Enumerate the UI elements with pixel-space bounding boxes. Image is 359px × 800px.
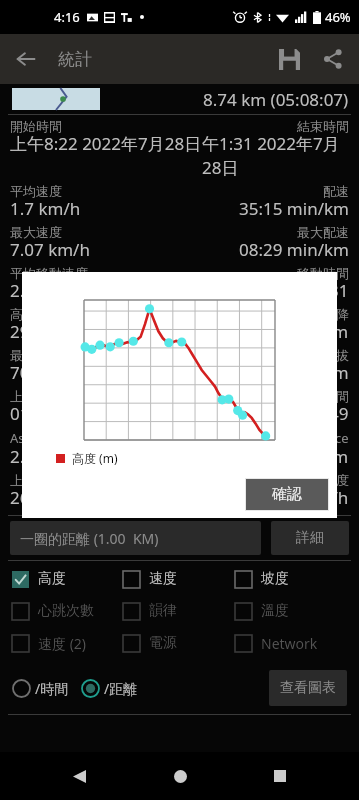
- staticText: 高度上升: [10, 306, 62, 322]
- staticText: 337.55 m/h: [258, 486, 349, 509]
- staticText: 上升時間: [10, 388, 62, 404]
- staticText: 開始時間: [10, 118, 62, 134]
- button[interactable]: Home: [158, 754, 202, 798]
- button[interactable]: Save: [267, 37, 311, 81]
- staticText: 詳細: [296, 529, 324, 547]
- staticText: 01:49: [305, 402, 349, 425]
- staticText: 最低海拔: [297, 347, 349, 363]
- staticText: 2955 m: [289, 320, 349, 343]
- staticText: 03:31: [305, 279, 349, 302]
- staticText: 46%: [325, 8, 351, 26]
- button[interactable]: 高度上升: [0, 306, 359, 345]
- button[interactable]: Back: [6, 39, 46, 79]
- staticText: 結束時間: [297, 118, 349, 134]
- staticText: 8.74 km (05:08:07): [203, 88, 349, 111]
- button[interactable]: 上升時間: [0, 388, 359, 427]
- button[interactable]: 上升速度: [0, 472, 359, 511]
- staticText: 上升速度: [10, 472, 62, 488]
- staticText: 心跳次數: [38, 602, 94, 620]
- staticText: 統計: [58, 49, 92, 70]
- staticText: 4:16: [54, 8, 80, 26]
- staticText: Network: [261, 634, 318, 653]
- staticText: 01:20: [10, 402, 54, 425]
- button[interactable]: 心跳次數: [12, 595, 123, 627]
- staticText: 最大配速: [297, 224, 349, 240]
- staticText: 最大速度: [10, 224, 62, 240]
- staticText: Descent pace: [267, 429, 349, 447]
- staticText: 確認: [272, 485, 302, 504]
- button[interactable]: /距離: [81, 673, 138, 704]
- staticText: 速度 (2): [38, 634, 87, 653]
- button[interactable]: Back: [57, 754, 101, 798]
- button[interactable]: 最大速度: [0, 224, 359, 263]
- button[interactable]: 韻律: [123, 595, 235, 627]
- button[interactable]: 速度: [123, 563, 235, 595]
- button[interactable]: 詳細: [271, 521, 349, 555]
- staticText: 下降速度: [297, 472, 349, 488]
- button[interactable]: 速度 (2): [12, 627, 123, 660]
- staticText: 高度 (m): [72, 450, 118, 466]
- staticText: /時間: [35, 679, 69, 698]
- staticText: 08:29 min/km: [239, 238, 349, 261]
- staticText: 高度下降: [297, 306, 349, 322]
- staticText: 2.77 km: [10, 445, 74, 468]
- button[interactable]: 開始時間: [0, 118, 359, 181]
- staticText: 下降時間: [297, 388, 349, 404]
- staticText: 1.7 km/h: [10, 197, 81, 220]
- staticText: 韻律: [149, 602, 177, 620]
- button[interactable]: 一圈的距離 (1.00 KM): [10, 521, 261, 555]
- button[interactable]: /時間: [12, 673, 69, 704]
- button[interactable]: 8.74 km (05:08:07): [0, 84, 359, 114]
- staticText: 266.47 m/h: [10, 486, 101, 509]
- staticText: 一圈的距離 (1.00 KM): [20, 529, 159, 548]
- staticText: 最高海拔: [10, 347, 62, 363]
- staticText: 2.75 km: [285, 445, 349, 468]
- staticText: 平均移動速度: [10, 265, 88, 281]
- button[interactable]: Share: [311, 37, 355, 81]
- staticText: Ascent pace: [10, 429, 84, 447]
- button[interactable]: Ascent pace: [0, 429, 359, 470]
- staticText: 配速: [323, 183, 349, 199]
- staticText: 坡度: [261, 570, 289, 588]
- button[interactable]: 最高海拔: [0, 347, 359, 386]
- staticText: /距離: [104, 679, 138, 698]
- button[interactable]: 查看圖表: [269, 670, 347, 706]
- staticText: 上午8:22 2022年7月28日: [10, 132, 202, 155]
- button[interactable]: 確認: [246, 479, 328, 510]
- button[interactable]: Recents: [258, 754, 302, 798]
- staticText: 電源: [149, 634, 177, 652]
- staticText: 7.07 km/h: [10, 238, 90, 261]
- staticText: 35:15 min/km: [239, 197, 349, 220]
- button[interactable]: 溫度: [235, 595, 347, 627]
- staticText: 查看圖表: [280, 679, 336, 697]
- button[interactable]: 平均移動速度: [0, 265, 359, 304]
- staticText: 溫度: [261, 602, 289, 620]
- button[interactable]: Network: [235, 627, 347, 660]
- button[interactable]: 電源: [123, 627, 235, 659]
- staticText: 午1:31 2022年7月28日: [202, 132, 349, 179]
- staticText: 速度: [149, 570, 177, 588]
- staticText: 高度: [38, 570, 66, 588]
- button[interactable]: 高度: [12, 563, 123, 595]
- staticText: 11 m: [309, 361, 349, 384]
- staticText: 2.4 km/h: [10, 279, 81, 302]
- staticText: 移動時間: [297, 265, 349, 281]
- staticText: 2953 m: [10, 320, 70, 343]
- staticText: 709 m: [10, 361, 60, 384]
- button[interactable]: 平均速度: [0, 183, 359, 222]
- button[interactable]: 坡度: [235, 563, 347, 595]
- staticText: 平均速度: [10, 183, 62, 199]
